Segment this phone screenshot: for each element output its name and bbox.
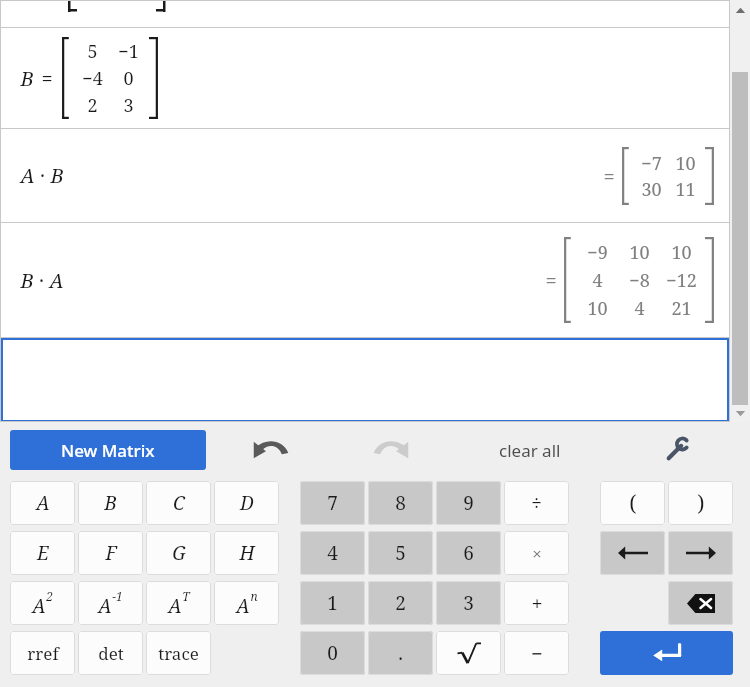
staticText: (	[629, 489, 637, 518]
staticText: 2	[87, 93, 98, 118]
button[interactable]: ÷	[504, 481, 569, 525]
button[interactable]: C	[146, 481, 211, 525]
button[interactable]: Settings	[652, 428, 702, 472]
staticText: B	[20, 267, 34, 294]
button[interactable]: 1	[300, 581, 365, 625]
button[interactable]: −	[504, 631, 569, 675]
staticText: −1	[112, 588, 123, 604]
button[interactable]: 9	[436, 481, 501, 525]
button[interactable]: A	[78, 581, 143, 625]
staticText: 9	[463, 490, 474, 516]
button[interactable]: Redo	[360, 428, 422, 472]
staticText: =	[41, 65, 53, 92]
staticText: det	[98, 642, 124, 665]
button[interactable]: 0	[300, 631, 365, 675]
staticText: 30	[641, 177, 662, 202]
button[interactable]: 4	[300, 531, 365, 575]
button[interactable]: New Matrix	[10, 430, 206, 470]
staticText: clear all	[499, 439, 561, 462]
button[interactable]: 7	[300, 481, 365, 525]
button[interactable]: 3	[436, 581, 501, 625]
staticText: 2	[395, 590, 406, 616]
staticText: E	[37, 540, 49, 566]
button[interactable]	[1, 338, 729, 422]
button[interactable]: clear all	[470, 428, 590, 472]
button[interactable]: D	[214, 481, 279, 525]
button[interactable]: 2	[368, 581, 433, 625]
button[interactable]: rref	[10, 631, 75, 675]
staticText: 3	[123, 93, 134, 118]
button[interactable]	[668, 531, 733, 575]
staticText: 10	[671, 240, 692, 265]
staticText: −8	[629, 268, 650, 293]
button[interactable]: A	[10, 581, 75, 625]
staticText: 0	[327, 640, 338, 666]
button[interactable]: Scroll up	[730, 0, 750, 20]
staticText: trace	[158, 642, 199, 665]
staticText: 10	[587, 296, 608, 321]
button[interactable]: +	[504, 581, 569, 625]
button[interactable]: G	[146, 531, 211, 575]
button[interactable]: trace	[146, 631, 211, 675]
staticText: A	[49, 267, 64, 294]
staticText: n	[250, 588, 258, 604]
button[interactable]: 5	[368, 531, 433, 575]
button[interactable]: Scroll down	[730, 405, 750, 422]
button[interactable]: A	[10, 481, 75, 525]
staticText: .	[398, 640, 403, 666]
staticText: 5	[87, 39, 98, 64]
button[interactable]: )	[668, 481, 733, 525]
staticText: ·	[39, 267, 44, 294]
button[interactable]: 6	[436, 531, 501, 575]
button[interactable]	[436, 631, 501, 675]
staticText: −7	[641, 151, 662, 176]
staticText: rref	[27, 642, 59, 665]
staticText: New Matrix	[61, 439, 155, 462]
staticText: G	[172, 540, 186, 566]
button[interactable]: E	[10, 531, 75, 575]
staticText: =	[545, 267, 557, 294]
staticText: −	[531, 640, 543, 667]
staticText: 0	[123, 66, 134, 91]
staticText: +	[531, 590, 543, 617]
button[interactable]: .	[368, 631, 433, 675]
staticText: −12	[666, 268, 697, 293]
staticText: A	[32, 593, 46, 619]
staticText: −9	[587, 240, 608, 265]
staticText: C	[173, 490, 185, 516]
staticText: 10	[675, 151, 696, 176]
button[interactable]	[600, 531, 665, 575]
button[interactable]: (	[600, 481, 665, 525]
button[interactable]: 8	[368, 481, 433, 525]
button[interactable]: A	[214, 581, 279, 625]
staticText: =	[603, 163, 615, 190]
staticText: ×	[532, 542, 542, 565]
staticText: 4	[592, 268, 603, 293]
button[interactable]: det	[78, 631, 143, 675]
button[interactable]: H	[214, 531, 279, 575]
button[interactable]: Undo	[240, 428, 302, 472]
button[interactable]: F	[78, 531, 143, 575]
staticText: H	[239, 540, 255, 566]
staticText: D	[240, 490, 254, 516]
staticText: 8	[395, 490, 406, 516]
staticText: T	[182, 588, 190, 604]
staticText: ·	[40, 162, 45, 189]
button[interactable]: A	[146, 581, 211, 625]
staticText: ÷	[531, 490, 542, 516]
staticText: −1	[118, 39, 139, 64]
staticText: −4	[82, 66, 103, 91]
staticText: 2	[46, 588, 53, 604]
button[interactable]: Backspace	[668, 581, 733, 625]
staticText: B	[50, 162, 64, 189]
button[interactable]: Enter	[600, 631, 733, 675]
staticText: 1	[327, 590, 338, 616]
staticText: A	[236, 593, 250, 619]
staticText: A	[36, 490, 50, 516]
staticText: 6	[463, 540, 474, 566]
staticText: 21	[671, 296, 692, 321]
button[interactable]: ×	[504, 531, 569, 575]
staticText: 11	[675, 177, 696, 202]
button[interactable]: B	[78, 481, 143, 525]
